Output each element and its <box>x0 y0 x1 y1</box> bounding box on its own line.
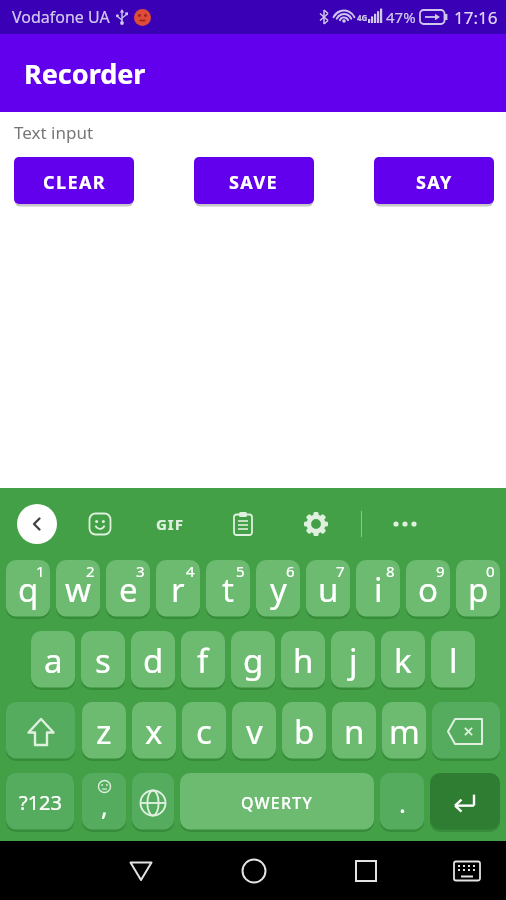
staticText: y <box>270 567 287 612</box>
staticText: 7 <box>336 561 345 581</box>
button[interactable]: e <box>106 560 150 619</box>
staticText: p <box>468 567 489 612</box>
button[interactable]: m <box>382 702 426 761</box>
button[interactable]: , <box>82 773 126 832</box>
staticText: QWERTY <box>241 792 314 814</box>
staticText: n <box>344 709 365 754</box>
staticText: g <box>243 638 264 683</box>
staticText: t <box>222 567 234 612</box>
button[interactable] <box>17 504 57 544</box>
button[interactable]: q <box>6 560 50 619</box>
button[interactable]: d <box>131 631 175 690</box>
staticText: GIF <box>156 514 184 534</box>
staticText: Text input <box>14 121 94 144</box>
staticText: 1 <box>36 561 45 581</box>
staticText: Vodafone UA <box>12 6 110 28</box>
staticText: SAY <box>416 170 453 195</box>
button[interactable] <box>351 856 381 886</box>
staticText: m <box>389 709 420 754</box>
button[interactable]: SAY <box>374 157 494 207</box>
button[interactable]: n <box>332 702 376 761</box>
staticText: 6 <box>286 561 295 581</box>
staticText: 17:16 <box>454 6 498 29</box>
staticText: l <box>449 638 458 683</box>
button[interactable]: x <box>132 702 176 761</box>
button[interactable]: CLEAR <box>14 157 134 207</box>
staticText: j <box>349 638 358 683</box>
staticText: f <box>197 638 209 683</box>
staticText: CLEAR <box>43 170 106 195</box>
button[interactable]: i <box>356 560 400 619</box>
button[interactable]: j <box>331 631 375 690</box>
button[interactable]: g <box>231 631 275 690</box>
button[interactable]: f <box>181 631 225 690</box>
staticText: e <box>119 567 138 612</box>
staticText: 0 <box>486 561 495 581</box>
staticText: SAVE <box>229 170 279 195</box>
staticText: c <box>196 709 212 754</box>
staticText: 2 <box>86 561 95 581</box>
staticText: . <box>399 785 406 820</box>
staticText: 47% <box>386 7 416 27</box>
staticText: 9 <box>436 561 445 581</box>
staticText: 5 <box>236 561 245 581</box>
button[interactable]: GIF <box>156 514 184 534</box>
button[interactable]: a <box>31 631 75 690</box>
staticText: h <box>293 638 314 683</box>
staticText: , <box>101 789 108 823</box>
button[interactable]: l <box>431 631 475 690</box>
button[interactable]: r <box>156 560 200 619</box>
button[interactable]: u <box>306 560 350 619</box>
staticText: 8 <box>386 561 395 581</box>
staticText: ?123 <box>19 789 62 816</box>
button[interactable] <box>126 856 156 886</box>
button[interactable]: b <box>282 702 326 761</box>
button[interactable] <box>88 512 112 536</box>
button[interactable]: y <box>256 560 300 619</box>
button[interactable]: t <box>206 560 250 619</box>
staticText: b <box>294 709 315 754</box>
staticText: 4G <box>357 12 368 23</box>
staticText: 4 <box>186 561 195 581</box>
staticText: k <box>394 638 412 683</box>
button[interactable]: QWERTY <box>180 773 374 832</box>
button[interactable] <box>304 512 328 536</box>
staticText: z <box>96 709 112 754</box>
button[interactable]: k <box>381 631 425 690</box>
staticText: Recorder <box>24 55 146 92</box>
button[interactable]: ?123 <box>6 773 74 832</box>
button[interactable]: s <box>81 631 125 690</box>
button[interactable]: p <box>456 560 500 619</box>
button[interactable] <box>452 856 482 886</box>
staticText: u <box>318 567 339 612</box>
button[interactable] <box>233 512 253 536</box>
staticText: o <box>418 567 438 612</box>
button[interactable]: z <box>82 702 126 761</box>
button[interactable] <box>430 773 500 832</box>
button[interactable] <box>392 512 418 536</box>
staticText: 3 <box>136 561 145 581</box>
staticText: x <box>145 709 163 754</box>
staticText: v <box>246 709 263 754</box>
button[interactable] <box>6 702 75 761</box>
button[interactable]: w <box>56 560 100 619</box>
staticText: q <box>18 567 39 612</box>
button[interactable] <box>239 856 269 886</box>
staticText: i <box>374 567 383 612</box>
button[interactable]: SAVE <box>194 157 314 207</box>
button[interactable]: o <box>406 560 450 619</box>
button[interactable]: c <box>182 702 226 761</box>
staticText: w <box>65 567 91 612</box>
button[interactable] <box>132 773 174 832</box>
staticText: d <box>143 638 164 683</box>
staticText: a <box>44 638 63 683</box>
staticText: s <box>95 638 111 683</box>
button[interactable]: h <box>281 631 325 690</box>
staticText: r <box>171 567 185 612</box>
button[interactable]: v <box>232 702 276 761</box>
button[interactable] <box>432 702 500 761</box>
button[interactable]: . <box>380 773 424 832</box>
